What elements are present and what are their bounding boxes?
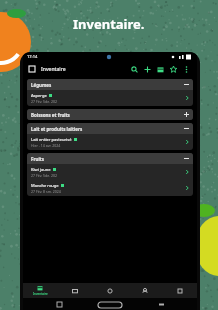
staticText: Inventaire.: [73, 15, 145, 33]
staticText: 27 Fév. Sde. 202: [31, 173, 58, 178]
staticText: Inventaire: [33, 292, 48, 296]
staticText: Kiwi jaune: [31, 167, 51, 172]
button[interactable]: Lait et produits laitiers: [27, 123, 193, 134]
button[interactable]: Search: [128, 63, 141, 76]
staticText: Inventaire: [41, 66, 66, 73]
staticText: Boissons et fruits: [31, 112, 70, 118]
staticText: 27 Fév. Sde. 202: [31, 99, 58, 104]
staticText: Légumes: [31, 82, 52, 88]
button[interactable]: Recents: [55, 300, 64, 309]
button[interactable]: Boissons et fruits: [27, 109, 193, 120]
button[interactable]: [57, 283, 92, 298]
button[interactable]: Back: [157, 300, 166, 309]
button[interactable]: Asperge: [27, 90, 193, 106]
button[interactable]: Home: [95, 300, 125, 309]
button[interactable]: Menu: [27, 64, 37, 74]
staticText: Lait et produits laitiers: [31, 126, 83, 132]
button[interactable]: Kiwi jaune: [27, 164, 193, 180]
button[interactable]: Fruits: [27, 153, 193, 164]
staticText: 17:14: [27, 54, 38, 59]
button[interactable]: [127, 283, 162, 298]
button[interactable]: Favorite: [167, 63, 180, 76]
button[interactable]: [162, 283, 197, 298]
staticText: Hier - 14 avr. 2024: [31, 143, 61, 148]
button[interactable]: More options: [180, 63, 193, 76]
staticText: Manche rouge: [31, 183, 59, 188]
button[interactable]: [92, 283, 127, 298]
button[interactable]: Archive: [154, 63, 167, 76]
staticText: Asperge: [31, 93, 47, 98]
button[interactable]: Add: [141, 63, 154, 76]
button[interactable]: Inventaire: [23, 283, 57, 298]
button[interactable]: Manche rouge: [27, 180, 193, 196]
staticText: Fruits: [31, 156, 44, 162]
button[interactable]: Lait entier pasteurisé: [27, 134, 193, 150]
staticText: Lait entier pasteurisé: [31, 137, 72, 142]
staticText: 27 Fév. 8 sm. 2024: [31, 189, 61, 194]
button[interactable]: Légumes: [27, 79, 193, 90]
